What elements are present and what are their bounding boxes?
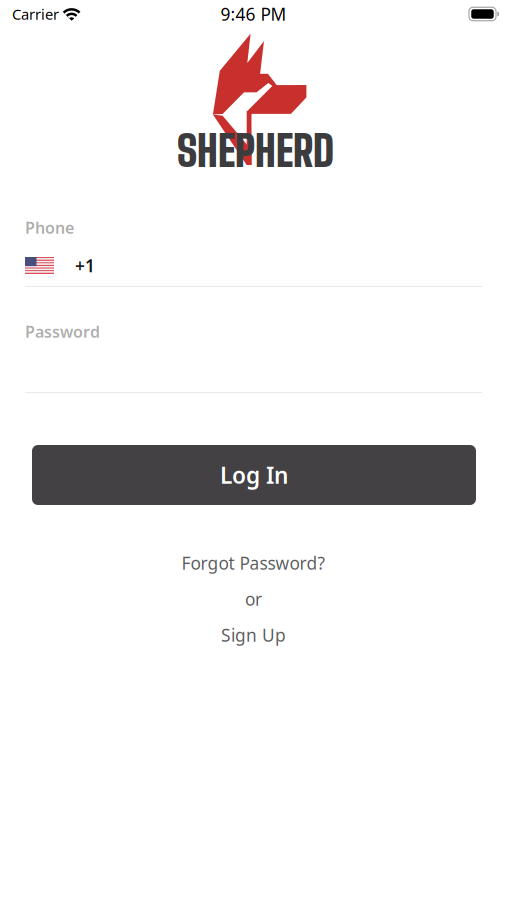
button[interactable]: Sign Up	[221, 624, 286, 646]
staticText: Carrier	[12, 4, 59, 24]
staticText: Phone	[25, 217, 74, 238]
staticText: Log In	[220, 460, 288, 490]
button[interactable]: Log In	[32, 445, 476, 505]
staticText: Password	[25, 321, 100, 342]
staticText: 9:46 PM	[220, 2, 286, 25]
staticText: SHEPHERD	[177, 125, 334, 176]
staticText: Sign Up	[221, 623, 286, 646]
button[interactable]: Forgot Password?	[181, 552, 325, 574]
staticText: +1	[75, 254, 95, 277]
staticText: Forgot Password?	[181, 551, 325, 574]
staticText: or	[245, 587, 262, 610]
